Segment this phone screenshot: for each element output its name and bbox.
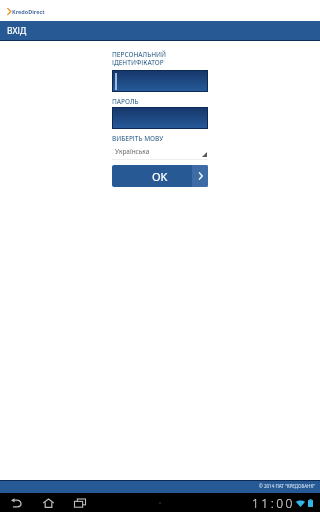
staticText: © 2014 ПАТ "КРЕДОБАНК" <box>259 483 316 489</box>
staticText: 11:00 <box>252 495 295 511</box>
button[interactable] <box>113 108 207 128</box>
button[interactable]: Українська <box>112 145 208 159</box>
staticText: KredoDirect <box>12 8 45 15</box>
staticText: ПАРОЛЬ <box>112 97 139 106</box>
button[interactable]: OK <box>112 165 208 187</box>
staticText: Українська <box>115 147 150 156</box>
button[interactable]: Home <box>39 493 58 512</box>
button[interactable]: KredoDirect <box>7 8 45 15</box>
staticText: OK <box>152 169 168 184</box>
button[interactable] <box>113 71 207 91</box>
button[interactable]: Back <box>7 493 26 512</box>
staticText: ВХІД <box>7 25 27 37</box>
staticText: ПЕРСОНАЛЬНИЙ ІДЕНТИФІКАТОР <box>112 50 167 67</box>
staticText: ВИБЕРІТЬ МОВУ <box>112 134 164 143</box>
button[interactable]: Recent apps <box>70 493 89 512</box>
